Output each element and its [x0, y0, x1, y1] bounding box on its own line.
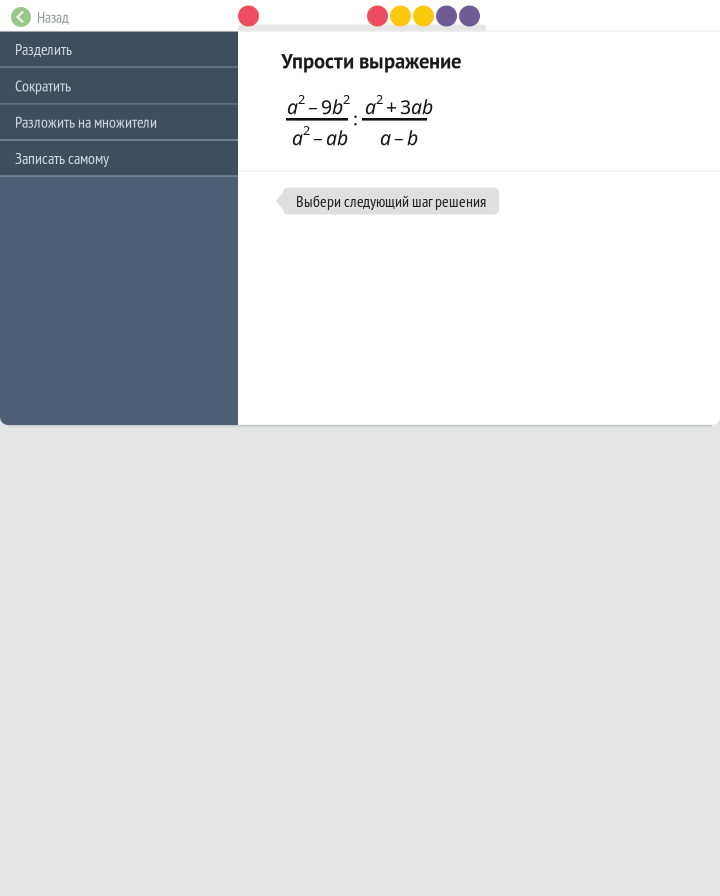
staticText: –: [313, 124, 323, 151]
staticText: 9: [321, 93, 332, 120]
staticText: ab: [411, 93, 433, 120]
staticText: a: [365, 93, 376, 120]
staticText: Разложить на множители: [15, 111, 157, 132]
staticText: –: [394, 124, 404, 151]
button[interactable]: Разделить: [0, 31, 238, 67]
staticText: ab: [326, 124, 348, 151]
staticText: a: [287, 93, 298, 120]
button[interactable]: Разложить на множители: [0, 104, 238, 139]
button[interactable]: Назад: [0, 0, 110, 30]
staticText: Записать самому: [15, 148, 109, 168]
staticText: Упрости выражение: [281, 47, 461, 74]
staticText: 2: [298, 90, 305, 108]
staticText: –: [308, 93, 318, 120]
staticText: Выбери следующий шаг решения: [296, 191, 486, 211]
staticText: Назад: [37, 7, 69, 27]
staticText: 2: [303, 121, 310, 139]
staticText: b: [407, 124, 418, 151]
staticText: Разделить: [15, 39, 72, 59]
button[interactable]: Сократить: [0, 68, 238, 103]
button[interactable]: Записать самому: [0, 140, 238, 176]
staticText: a: [292, 124, 303, 151]
staticText: a: [380, 124, 391, 151]
staticText: +: [386, 93, 397, 120]
staticText: Сократить: [15, 75, 71, 96]
staticText: 2: [376, 90, 383, 108]
staticText: :: [353, 105, 358, 131]
staticText: 3: [400, 93, 411, 120]
staticText: 2: [343, 90, 350, 108]
staticText: b: [332, 93, 343, 120]
